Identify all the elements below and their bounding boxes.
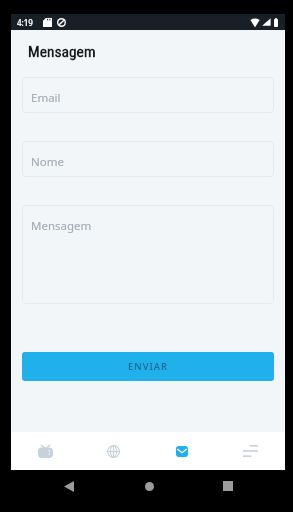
staticText: ENVIAR <box>128 360 169 373</box>
button[interactable]: Web <box>79 432 147 470</box>
button[interactable]: Email <box>22 77 274 113</box>
staticText: Email <box>31 90 61 106</box>
button[interactable]: TV <box>11 432 79 470</box>
staticText: 4:19 <box>17 17 33 28</box>
button[interactable]: Back <box>58 475 80 497</box>
button[interactable]: Home <box>138 475 160 497</box>
button[interactable]: Mensagem <box>22 205 274 304</box>
staticText: Mensagem <box>31 218 92 234</box>
button[interactable]: Nome <box>22 141 274 177</box>
staticText: Mensagem <box>28 43 96 61</box>
button[interactable]: Recents <box>217 475 239 497</box>
button[interactable]: ENVIAR <box>22 352 274 381</box>
button[interactable]: Messages <box>147 432 216 470</box>
staticText: Nome <box>31 154 64 170</box>
button[interactable]: More <box>216 432 285 470</box>
